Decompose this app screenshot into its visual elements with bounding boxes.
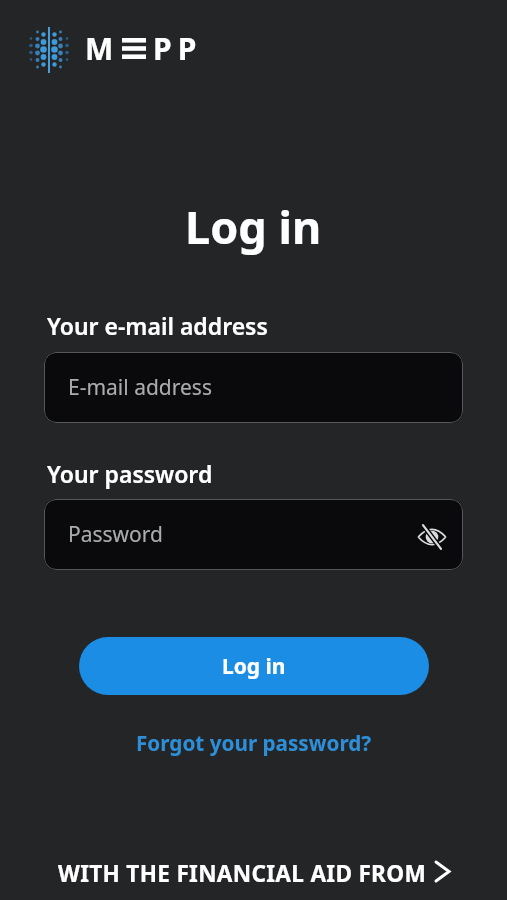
button[interactable]: E-mail address [44,352,463,423]
staticText: Your e-mail address [47,310,268,335]
button[interactable]: Log in [79,637,429,695]
staticText: PP [153,28,203,69]
staticText: WITH THE FINANCIAL AID FROM [58,858,427,884]
staticText: Password [68,520,163,549]
button[interactable] [416,521,448,553]
staticText: Log in [222,652,286,681]
staticText: Log in [185,196,322,244]
button[interactable]: Forgot your password? [136,729,372,753]
button[interactable]: Password [44,499,463,570]
staticText: Forgot your password? [136,729,372,753]
staticText: Your password [47,458,213,483]
staticText: E-mail address [68,373,212,402]
button[interactable]: WITH THE FINANCIAL AID FROM [58,858,450,884]
staticText: M [85,28,116,69]
